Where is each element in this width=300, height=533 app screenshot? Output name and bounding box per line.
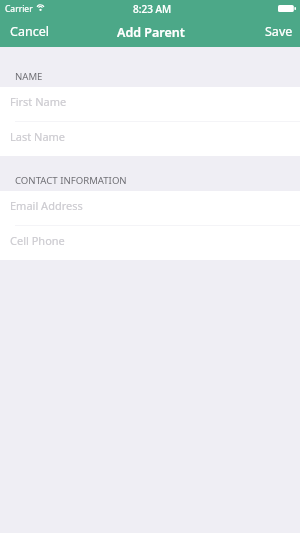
staticText: NAME xyxy=(15,70,43,83)
button[interactable]: Cancel xyxy=(0,20,58,47)
button[interactable]: Email Address xyxy=(0,191,300,225)
staticText: Cancel xyxy=(10,23,49,40)
button[interactable]: Save xyxy=(256,20,300,47)
staticText: 8:23 AM xyxy=(133,2,172,16)
button[interactable]: Last Name xyxy=(0,122,300,156)
button[interactable]: Cell Phone xyxy=(0,226,300,260)
staticText: Add Parent xyxy=(117,24,185,41)
staticText: Save xyxy=(265,23,293,40)
staticText: First Name xyxy=(10,94,67,109)
button[interactable]: First Name xyxy=(0,87,300,121)
staticText: Cell Phone xyxy=(10,233,65,248)
staticText: Email Address xyxy=(10,198,83,213)
other: Battery full xyxy=(278,5,296,12)
staticText: Carrier xyxy=(5,3,33,15)
staticText: CONTACT INFORMATION xyxy=(15,174,127,187)
staticText: Last Name xyxy=(10,129,66,144)
other: Wi-Fi signal xyxy=(36,4,45,11)
